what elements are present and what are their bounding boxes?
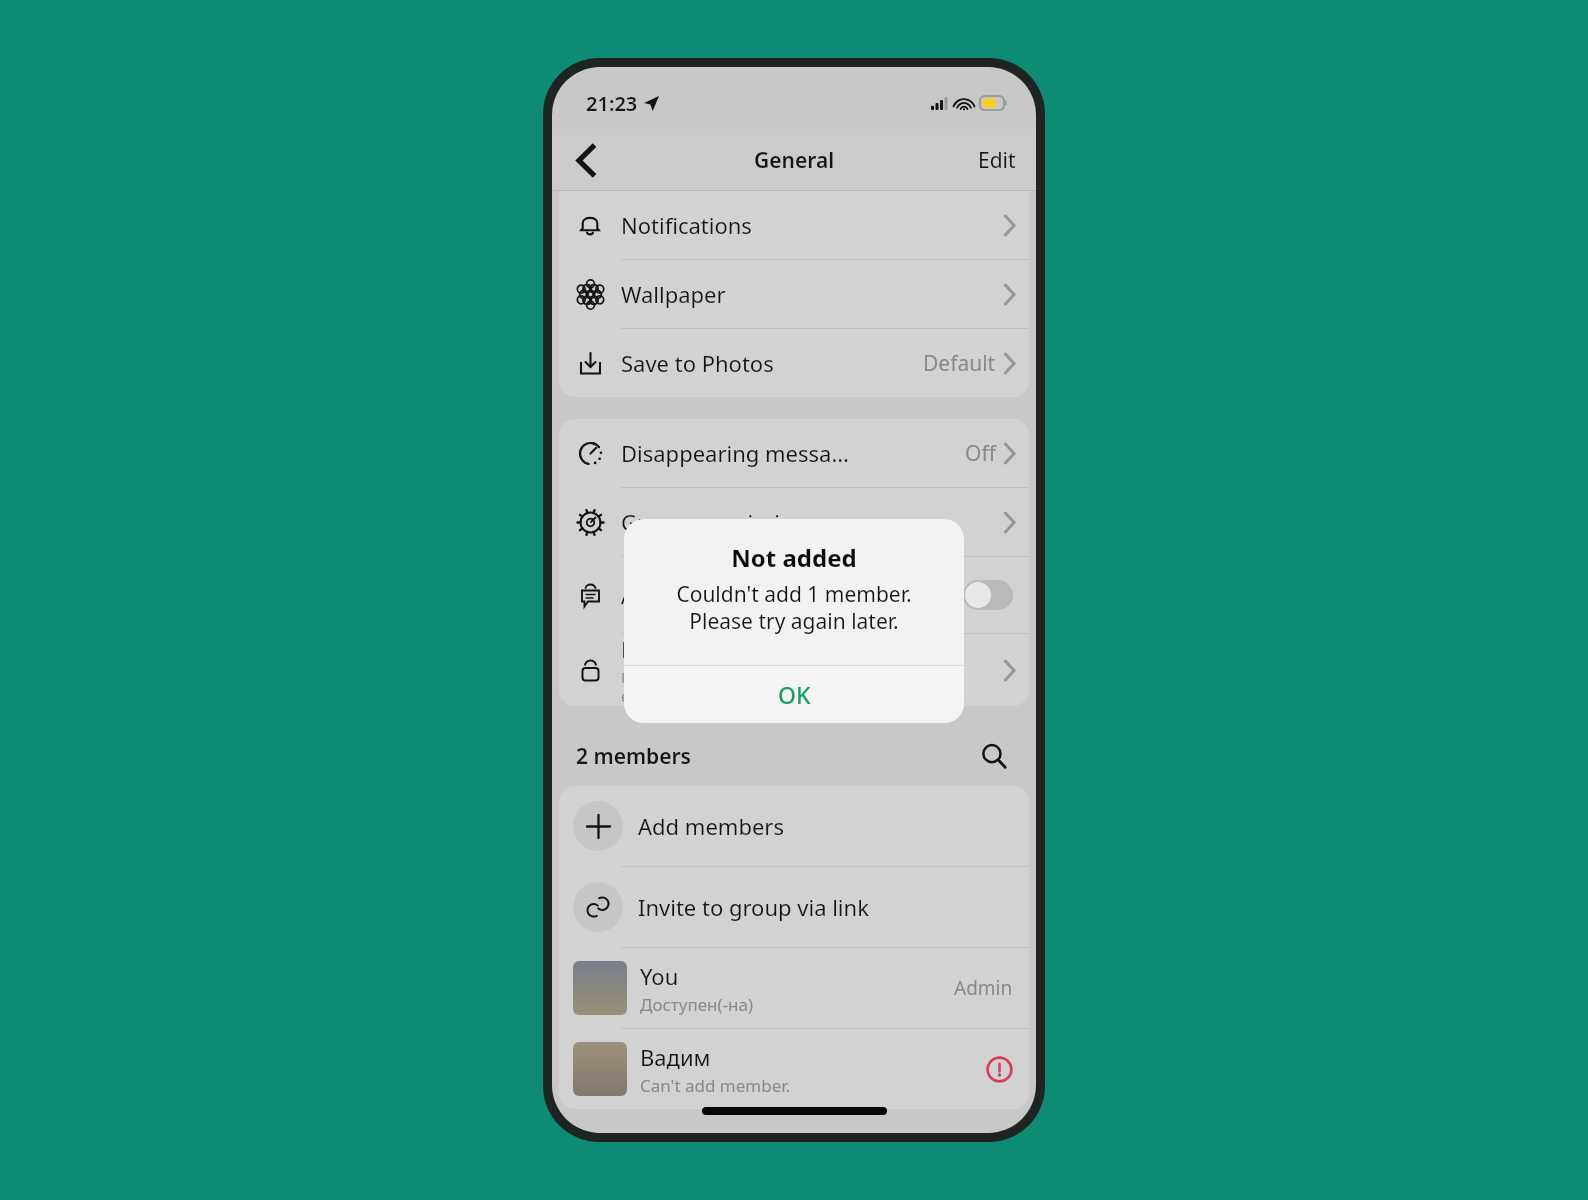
button[interactable]: Back (562, 136, 610, 184)
staticText: Add members (638, 811, 784, 841)
button[interactable]: Advanced chat privacy (559, 557, 1029, 633)
staticText: Save to Photos (621, 348, 774, 378)
button[interactable]: Search members (974, 736, 1014, 776)
staticText: Invite to group via link (638, 892, 869, 922)
button[interactable]: Disappearing messa… (559, 419, 1029, 487)
staticText: Couldn't add 1 member. Please try again … (642, 580, 946, 635)
staticText: Can't add member. (640, 1074, 791, 1097)
button[interactable]: Invite to group via link (559, 867, 1029, 947)
staticText: Доступен(-на) (640, 993, 754, 1016)
button[interactable]: Group permissions (559, 488, 1029, 556)
staticText: Вадим (640, 1042, 711, 1072)
staticText: You (640, 961, 679, 991)
staticText: Edit (978, 146, 1016, 175)
staticText: 21:23 (586, 90, 638, 117)
staticText: Off (965, 439, 996, 468)
staticText: OK (778, 679, 811, 710)
staticText: 2 members (576, 742, 691, 771)
button[interactable]: You (559, 948, 1029, 1028)
button[interactable]: Notifications (559, 191, 1029, 259)
button[interactable]: Save to Photos (559, 329, 1029, 397)
staticText: Default (923, 349, 996, 378)
staticText: Notifications (621, 210, 752, 240)
staticText: Advanced chat privacy (621, 580, 963, 610)
staticText: Not added (731, 541, 857, 574)
staticText: Disappearing messa… (621, 438, 849, 468)
staticText: Group permissions (621, 507, 818, 537)
button[interactable]: Вадим (559, 1029, 1029, 1109)
button[interactable]: OK (624, 666, 964, 723)
button[interactable]: Wallpaper (559, 260, 1029, 328)
staticText: General (754, 146, 835, 175)
button[interactable]: Encryption (559, 634, 1029, 706)
staticText: Admin (954, 975, 1013, 1001)
button[interactable]: Edit (958, 134, 1036, 187)
staticText: Messages and calls are end-to- end encry… (621, 667, 860, 706)
button[interactable]: Add members (559, 786, 1029, 866)
staticText: Encryption (621, 634, 732, 664)
staticText: Wallpaper (621, 279, 726, 309)
